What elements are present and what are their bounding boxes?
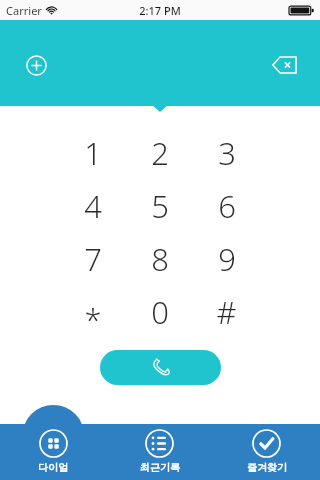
button[interactable]: 3	[193, 126, 260, 179]
staticText: *	[84, 298, 102, 340]
staticText: 8	[151, 238, 169, 280]
button[interactable]: 최근기록	[106, 418, 213, 480]
button[interactable]: 7	[60, 232, 126, 285]
staticText: 9	[218, 238, 236, 280]
staticText: 0	[151, 291, 169, 333]
button[interactable]: 8	[126, 232, 193, 285]
button[interactable]: 0	[126, 285, 193, 338]
staticText: 7	[84, 238, 102, 280]
button[interactable]: 2	[126, 126, 193, 179]
button[interactable]: 6	[193, 179, 260, 232]
button[interactable]: Backspace	[267, 48, 301, 82]
staticText: 1	[84, 132, 102, 174]
button[interactable]: 즐겨찾기	[213, 418, 320, 480]
staticText: #	[216, 291, 237, 333]
staticText: 즐겨찾기	[247, 461, 287, 474]
staticText: 다이얼	[38, 461, 68, 474]
staticText: 4	[84, 185, 102, 227]
button[interactable]: 1	[60, 126, 126, 179]
staticText: Carrier	[6, 3, 42, 18]
button[interactable]: 4	[60, 179, 126, 232]
button[interactable]: Call	[100, 350, 221, 385]
staticText: 2:17 PM	[139, 3, 181, 18]
staticText: 최근기록	[140, 461, 180, 474]
button[interactable]: *	[60, 285, 126, 338]
staticText: 5	[151, 185, 169, 227]
button[interactable]: #	[193, 285, 260, 338]
staticText: 6	[218, 185, 236, 227]
staticText: 3	[218, 132, 236, 174]
staticText: 2	[151, 132, 169, 174]
button[interactable]: 다이얼	[0, 418, 106, 480]
button[interactable]: Add contact	[20, 49, 52, 81]
button[interactable]: 5	[126, 179, 193, 232]
button[interactable]: 9	[193, 232, 260, 285]
